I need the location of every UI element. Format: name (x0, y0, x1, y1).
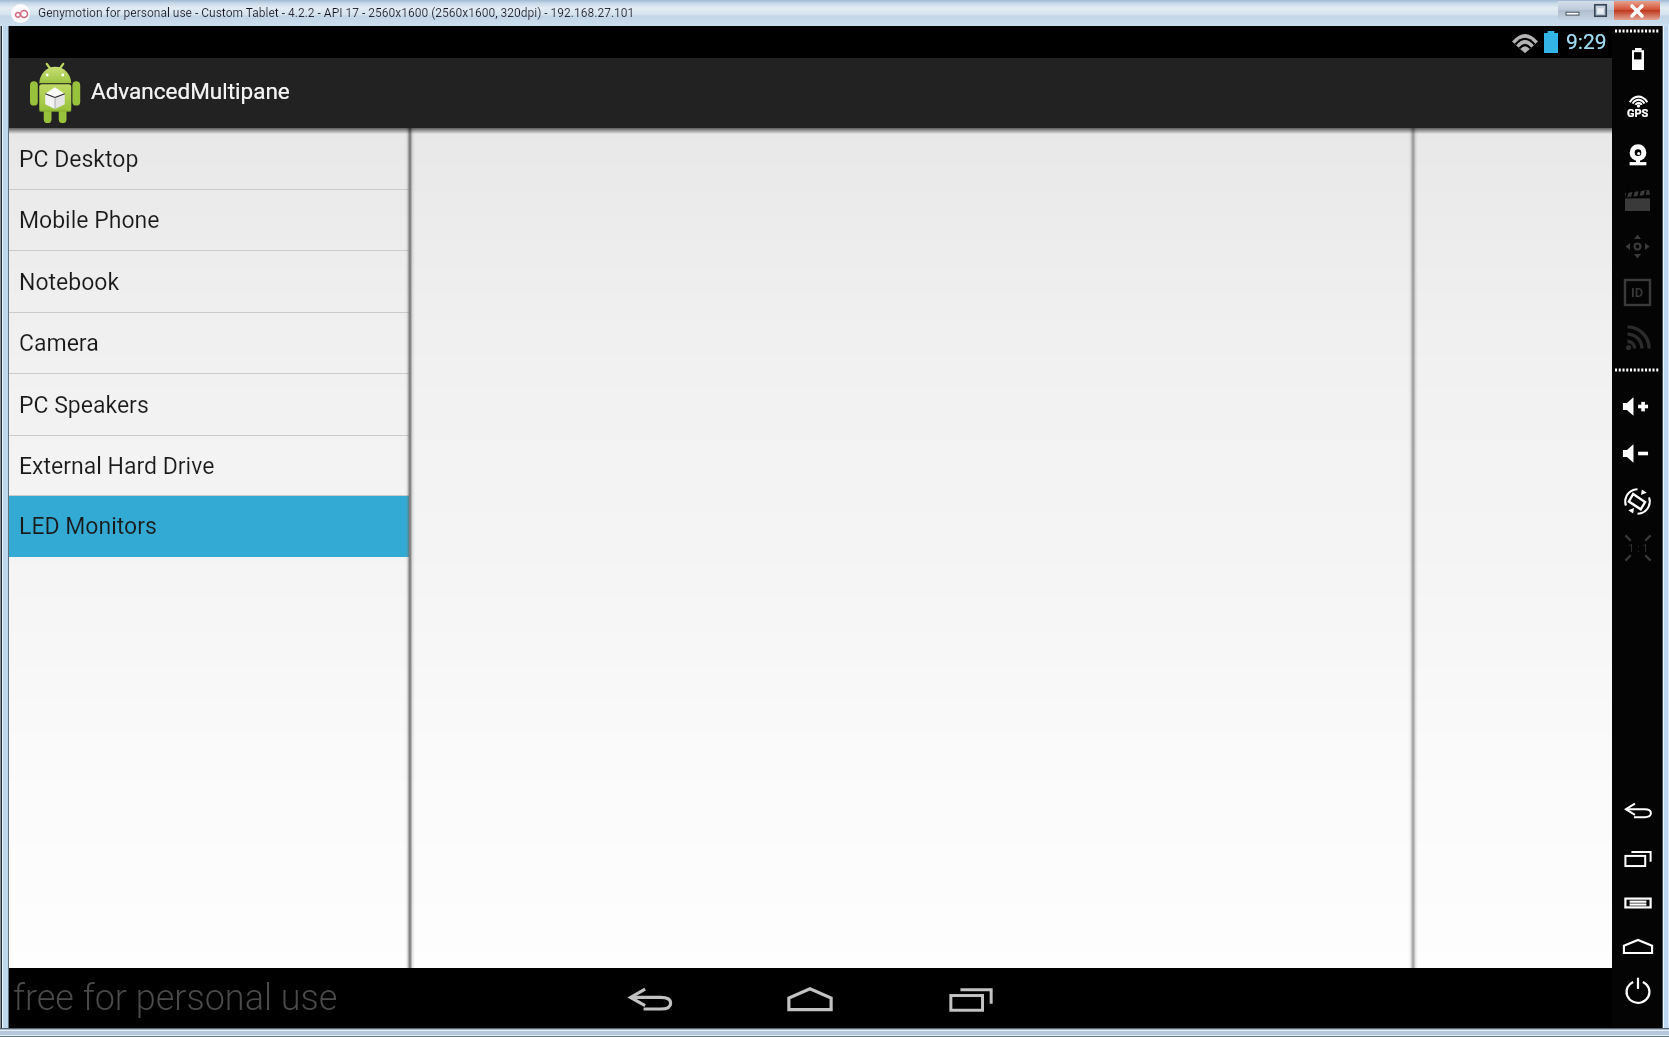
button[interactable]: External Hard Drive (9, 436, 409, 496)
button[interactable]: Camera (1612, 131, 1663, 177)
button[interactable]: Identifiers (1612, 269, 1663, 315)
button[interactable]: Camera (9, 313, 409, 374)
button[interactable]: Battery level (1612, 36, 1663, 82)
staticText: AdvancedMultipane (91, 78, 290, 104)
button[interactable]: PC Speakers (9, 374, 409, 436)
staticText: Mobile Phone (19, 207, 160, 234)
button[interactable]: Volume down (1612, 430, 1663, 476)
button[interactable]: Back (620, 968, 680, 1028)
button[interactable]: Home (1612, 924, 1663, 970)
button[interactable]: Mobile Phone (9, 190, 409, 251)
button[interactable]: PC Desktop (9, 128, 409, 190)
staticText: Notebook (19, 269, 120, 296)
staticText: LED Monitors (19, 513, 157, 540)
button[interactable]: Rotate screen (1612, 478, 1663, 524)
button[interactable]: Recent apps (1612, 836, 1663, 882)
button[interactable]: D-pad (1612, 223, 1663, 269)
button[interactable]: Home (780, 968, 840, 1028)
staticText: 9:29 (1566, 30, 1607, 55)
button[interactable]: Window control (1587, 1, 1614, 20)
staticText: 1 : 1 (1628, 542, 1649, 555)
button[interactable]: Back (1612, 788, 1663, 834)
button[interactable]: Volume up (1612, 383, 1663, 429)
button[interactable]: GPS (1612, 84, 1663, 130)
button[interactable]: Recent apps (941, 968, 1001, 1028)
staticText: Camera (19, 330, 99, 357)
staticText: PC Desktop (19, 146, 139, 173)
staticText: GPS (1627, 107, 1649, 120)
button[interactable]: Notebook (9, 251, 409, 313)
button[interactable]: Video recording (1612, 177, 1663, 223)
staticText: ID (1631, 285, 1644, 300)
button[interactable]: Network (1612, 315, 1663, 361)
staticText: Genymotion for personal use - Custom Tab… (38, 6, 635, 20)
button[interactable]: Menu (1612, 880, 1663, 926)
staticText: free for personal use (13, 977, 338, 1019)
button[interactable]: Window control (1558, 1, 1587, 20)
staticText: PC Speakers (19, 392, 149, 419)
button[interactable]: Power (1612, 967, 1663, 1013)
staticText: External Hard Drive (19, 453, 215, 480)
button[interactable]: Close window (1614, 1, 1660, 20)
button[interactable]: LED Monitors (9, 496, 409, 557)
button[interactable]: Zoom to actual size (1612, 525, 1663, 571)
